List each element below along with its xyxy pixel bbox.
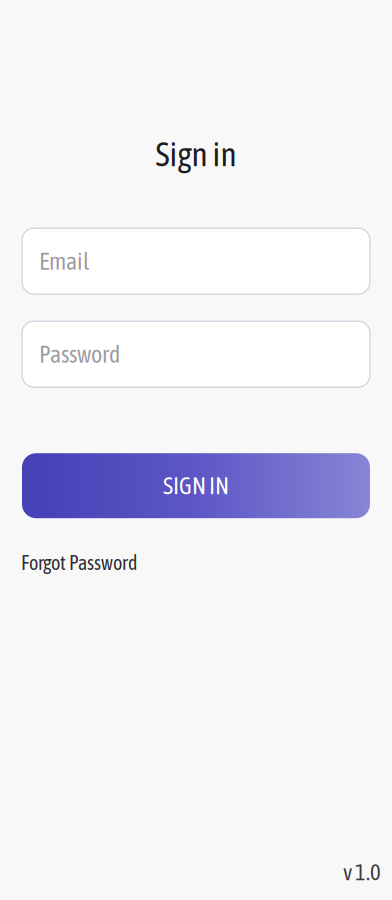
button[interactable]: Forgot Password [21, 551, 137, 574]
staticText: Password [39, 340, 120, 368]
staticText: v 1.0 [343, 859, 381, 885]
button[interactable]: Email [22, 228, 370, 294]
staticText: Forgot Password [21, 551, 137, 574]
button[interactable]: SIGN IN [22, 453, 370, 518]
staticText: SIGN IN [163, 472, 229, 499]
button[interactable]: Password [22, 321, 370, 387]
staticText: Email [39, 247, 89, 275]
staticText: Sign in [155, 135, 236, 173]
